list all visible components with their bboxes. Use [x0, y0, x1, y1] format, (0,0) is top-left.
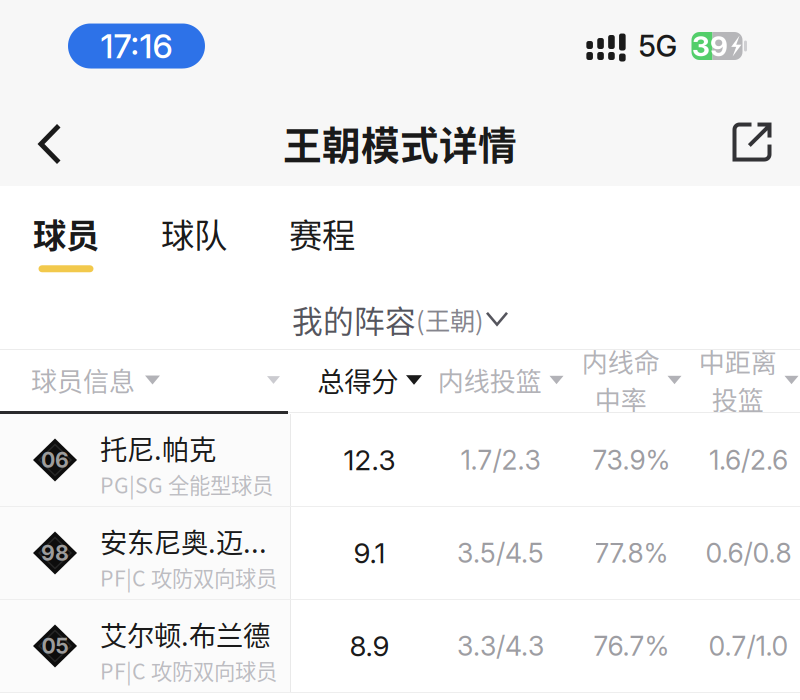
staticText: PF|C 攻防双向球员 — [100, 562, 277, 593]
button[interactable]: 球员信息 — [0, 349, 290, 411]
button[interactable]: 05 — [0, 600, 800, 692]
button[interactable]: 内线投篮 — [435, 349, 566, 411]
staticText: 06 — [41, 447, 69, 473]
staticText: 中距离 投篮 — [698, 342, 776, 418]
staticText: 总得分 — [317, 360, 398, 400]
staticText: 3.5/4.5 — [457, 537, 544, 569]
button[interactable]: 球队 — [130, 186, 258, 290]
staticText: 12.3 — [343, 443, 395, 477]
staticText: 98 — [41, 540, 69, 566]
staticText: 球员信息 — [31, 361, 135, 399]
staticText: 1.7/2.3 — [460, 444, 540, 476]
staticText: 赛程 — [289, 209, 355, 257]
staticText: 球员 — [33, 209, 99, 257]
staticText: 球队 — [161, 209, 227, 257]
staticText: 王朝模式详情 — [283, 115, 517, 171]
staticText: 托尼.帕克 — [100, 428, 216, 468]
button[interactable]: 球员 — [2, 186, 130, 290]
staticText: PF|C 攻防双向球员 — [100, 655, 277, 686]
button[interactable]: 我的阵容 — [292, 289, 508, 349]
button[interactable]: 06 — [0, 414, 800, 506]
staticText: 我的阵容 — [292, 297, 416, 342]
button[interactable]: 总得分 — [304, 349, 435, 411]
staticText: 0.7/1.0 — [708, 630, 788, 662]
staticText: 17:16 — [100, 26, 172, 66]
staticText: 05 — [41, 633, 68, 659]
button[interactable]: Share — [702, 92, 800, 186]
staticText: 安东尼奥.迈... — [100, 521, 267, 561]
staticText: 0.6/0.8 — [705, 537, 791, 569]
staticText: PG|SG 全能型球员 — [100, 469, 273, 500]
staticText: (王朝) — [416, 301, 484, 338]
staticText: 76.7% — [593, 630, 669, 662]
button[interactable]: Back — [0, 92, 94, 186]
button[interactable]: 赛程 — [258, 186, 386, 290]
button[interactable]: 中距离 投篮 — [697, 349, 800, 411]
staticText: 5G — [638, 28, 677, 64]
staticText: 9.1 — [353, 536, 385, 570]
staticText: 1.6/2.6 — [709, 444, 788, 476]
button[interactable]: 98 — [0, 507, 800, 599]
staticText: 77.8% — [594, 537, 668, 569]
staticText: 3.3/4.3 — [457, 630, 544, 662]
staticText: 39 — [692, 29, 728, 63]
staticText: 内线投篮 — [437, 361, 541, 399]
staticText: 8.9 — [349, 629, 389, 663]
staticText: 73.9% — [592, 444, 670, 476]
staticText: 艾尔顿.布兰德 — [100, 614, 270, 654]
button[interactable]: 内线命 中率 — [566, 349, 697, 411]
staticText: 内线命 中率 — [581, 342, 659, 418]
